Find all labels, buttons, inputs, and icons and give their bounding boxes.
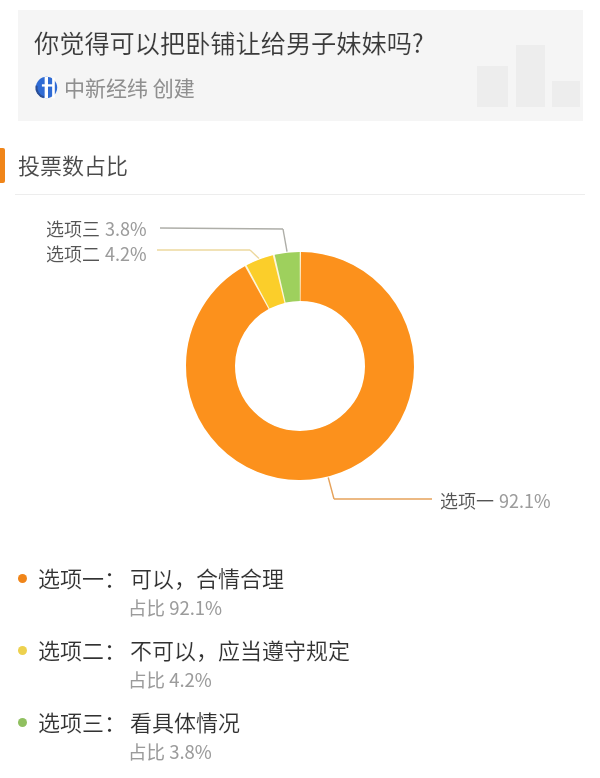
staticText: 占比 92.1% [128,594,223,621]
staticText: 可以，合情合理 [130,561,285,593]
staticText: 你觉得可以把卧铺让给男子妹妹吗? [34,24,424,60]
other: 中新经纬 logo [35,76,58,99]
staticText: 4.2% [105,240,147,266]
staticText: 占比 4.2% [128,666,212,693]
staticText: 看具体情况 [130,705,241,737]
staticText: 中新经纬 创建 [64,72,195,102]
staticText: 选项二： [38,633,127,665]
staticText: 选项三 [46,215,100,241]
button[interactable]: 选项一 [440,487,551,513]
staticText: 选项一 [440,487,494,513]
staticText: 选项一： [38,561,127,593]
staticText: 选项三： [38,705,127,737]
staticText: 3.8% [105,215,147,241]
button[interactable]: 选项三 [46,215,147,241]
staticText: 不可以，应当遵守规定 [130,633,351,665]
button[interactable]: 中新经纬 logo [35,72,195,102]
staticText: 92.1% [499,487,551,513]
button[interactable]: 选项二： [0,633,600,705]
staticText: 选项二 [46,240,100,266]
button[interactable]: 投票数占比 [0,139,600,194]
button[interactable]: 你觉得可以把卧铺让给男子妹妹吗? [18,10,583,121]
button[interactable]: 选项一： [0,561,600,633]
button[interactable]: 选项二 [46,240,147,266]
staticText: 投票数占比 [18,148,129,180]
button[interactable]: 选项三： [0,705,600,777]
staticText: 占比 3.8% [128,738,212,765]
